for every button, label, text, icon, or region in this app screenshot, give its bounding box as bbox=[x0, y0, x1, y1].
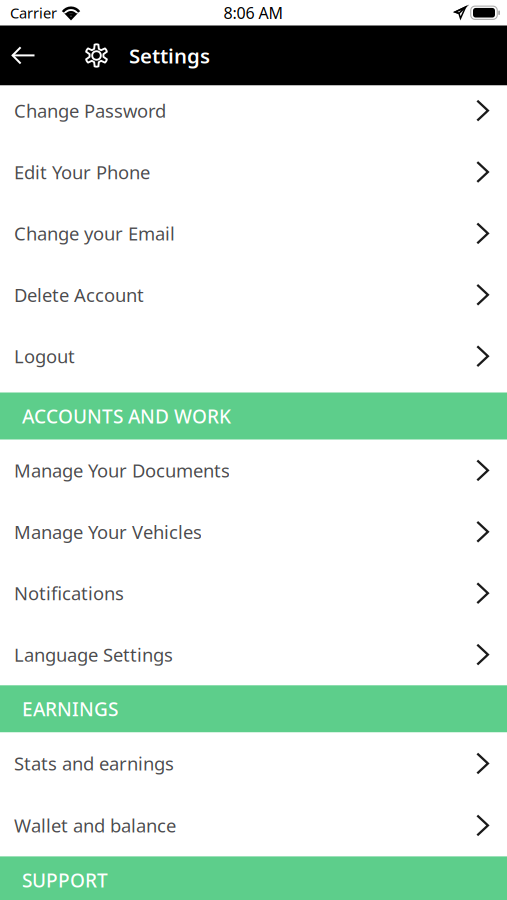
staticText: Wallet and balance bbox=[14, 813, 176, 838]
button[interactable]: Change your Email bbox=[0, 208, 507, 270]
staticText: Delete Account bbox=[14, 282, 144, 307]
button[interactable]: Notifications bbox=[0, 562, 507, 624]
staticText: Edit Your Phone bbox=[14, 159, 150, 185]
button[interactable]: Delete Account bbox=[0, 270, 507, 331]
button[interactable]: Wallet and balance bbox=[0, 794, 507, 856]
staticText: Carrier bbox=[10, 3, 57, 22]
staticText: Settings bbox=[129, 42, 210, 69]
button[interactable]: Manage Your Documents bbox=[0, 440, 507, 501]
button[interactable]: Stats and earnings bbox=[0, 732, 507, 794]
staticText: 8:06 AM bbox=[223, 2, 283, 23]
staticText: EARNINGS bbox=[22, 696, 118, 722]
button[interactable]: Language Settings bbox=[0, 624, 507, 685]
button[interactable]: Edit Your Phone bbox=[0, 147, 507, 208]
button[interactable]: Change Password bbox=[0, 85, 507, 147]
staticText: SUPPORT bbox=[22, 867, 108, 893]
staticText: Language Settings bbox=[14, 642, 173, 667]
staticText: Stats and earnings bbox=[14, 751, 174, 776]
staticText: Notifications bbox=[14, 581, 124, 606]
staticText: ACCOUNTS AND WORK bbox=[22, 403, 231, 429]
button[interactable]: Logout bbox=[0, 331, 507, 392]
staticText: Logout bbox=[14, 344, 75, 369]
staticText: Change your Email bbox=[14, 221, 175, 246]
staticText: Change Password bbox=[14, 98, 166, 123]
staticText: Manage Your Documents bbox=[14, 458, 230, 483]
staticText: Manage Your Vehicles bbox=[14, 519, 202, 544]
button[interactable]: Manage Your Vehicles bbox=[0, 501, 507, 562]
button[interactable]: Back bbox=[0, 25, 47, 85]
